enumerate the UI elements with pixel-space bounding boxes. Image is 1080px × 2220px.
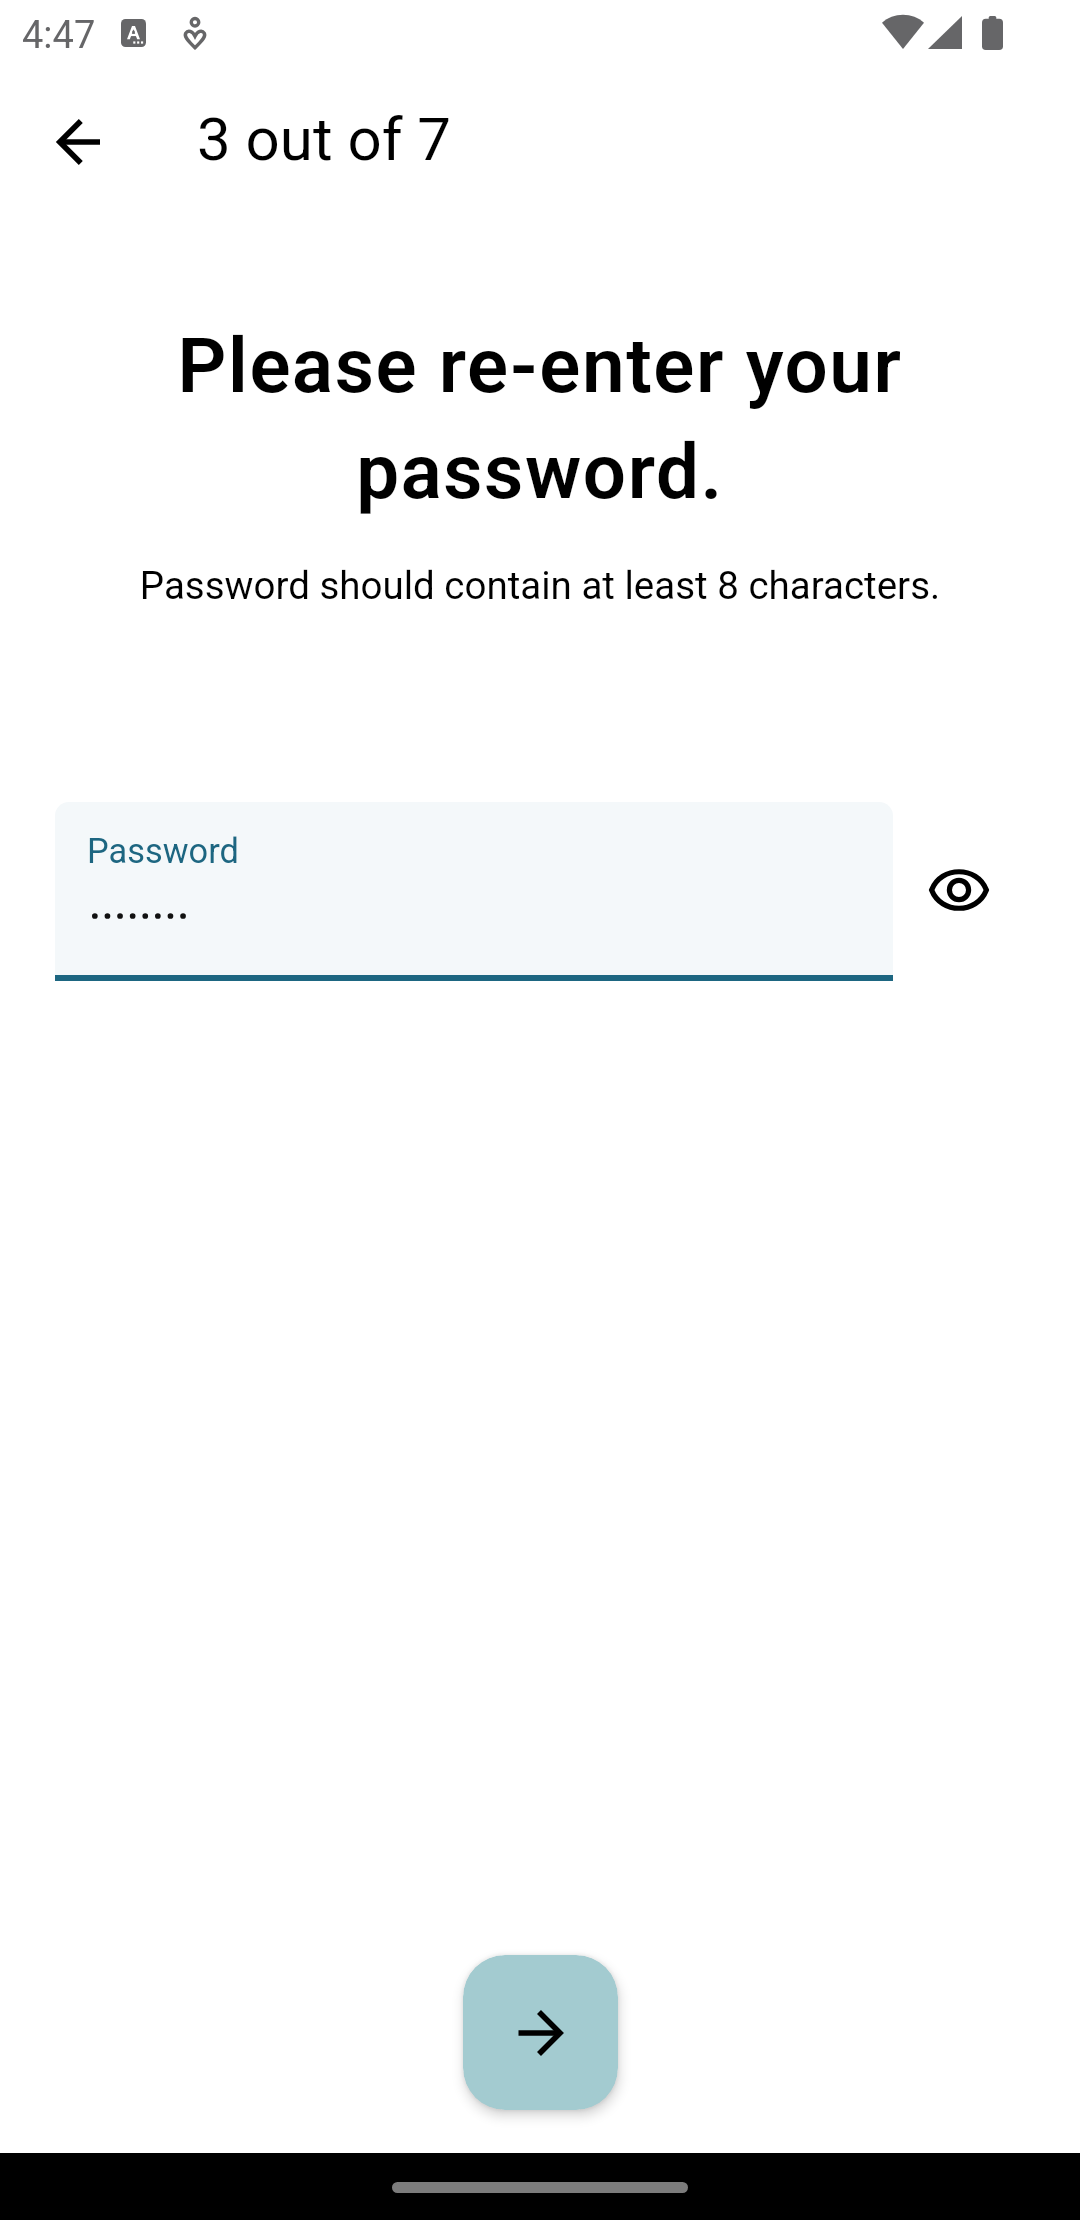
staticText: Password should contain at least 8 chara…: [0, 563, 1080, 608]
staticText: Please re-enter your password.: [60, 321, 1020, 517]
button[interactable]: Password: [55, 802, 893, 975]
staticText: 4:47: [22, 13, 96, 58]
button[interactable]: Navigate up: [25, 90, 129, 194]
staticText: Password: [87, 831, 239, 871]
button[interactable]: Next: [463, 1955, 618, 2110]
button[interactable]: Show password: [904, 835, 1014, 945]
staticText: 3 out of 7: [197, 104, 452, 174]
